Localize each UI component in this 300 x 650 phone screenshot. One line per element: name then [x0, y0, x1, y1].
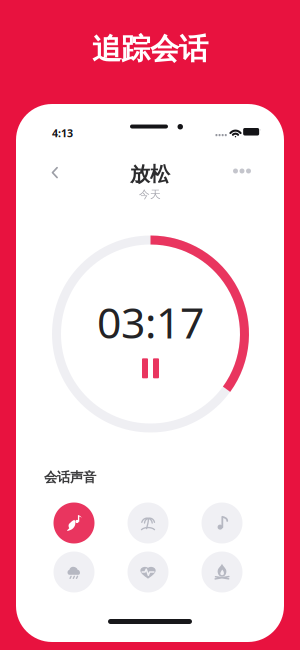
- button[interactable]: Campfire: [201, 551, 242, 592]
- staticText: 追踪会话: [92, 31, 208, 67]
- button[interactable]: Beach: [127, 502, 168, 543]
- button[interactable]: Back: [37, 156, 71, 191]
- button[interactable]: Birdsong: [53, 502, 94, 543]
- staticText: 03:17: [97, 294, 204, 350]
- button[interactable]: Heartbeat: [127, 551, 168, 592]
- staticText: 4:13: [52, 126, 73, 140]
- staticText: 放松: [130, 162, 170, 187]
- button[interactable]: More options: [223, 156, 261, 186]
- staticText: 今天: [139, 188, 161, 201]
- staticText: 会话声音: [44, 469, 96, 485]
- button[interactable]: Rain: [53, 551, 94, 592]
- button[interactable]: Music: [201, 502, 242, 543]
